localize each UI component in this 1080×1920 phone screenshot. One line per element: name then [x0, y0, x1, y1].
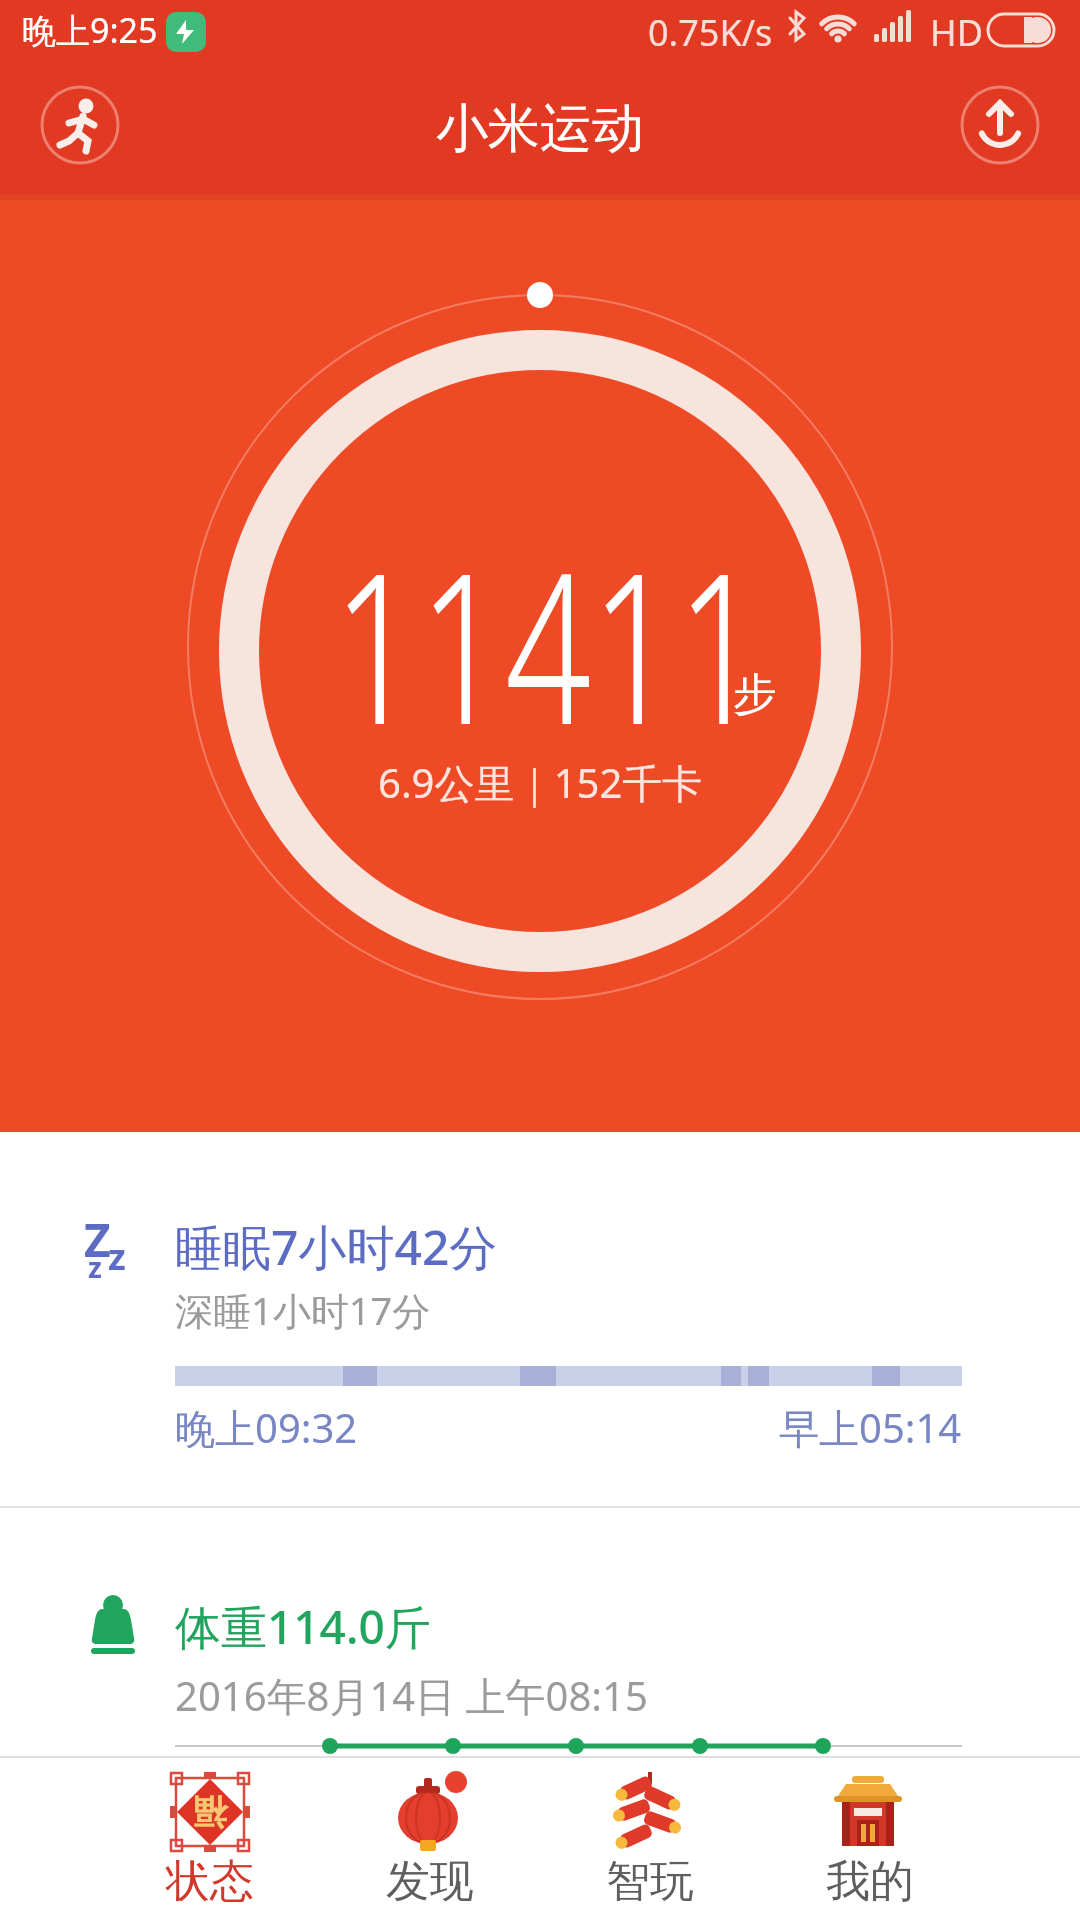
staticText: 小米运动: [436, 96, 644, 162]
staticText: 6.9公里｜152千卡: [378, 755, 703, 810]
button[interactable]: [956, 81, 1044, 169]
staticText: 早上05:14: [779, 1400, 962, 1455]
button[interactable]: 发现: [320, 1758, 540, 1920]
staticText: 晚上9:25: [22, 7, 158, 53]
staticText: Z: [84, 1208, 111, 1271]
staticText: 深睡1小时17分: [175, 1284, 431, 1336]
staticText: 睡眠7小时42分: [175, 1214, 498, 1280]
staticText: 晚上09:32: [175, 1400, 358, 1455]
staticText: 2016年8月14日 上午08:15: [175, 1668, 648, 1723]
staticText: HD: [930, 8, 983, 57]
staticText: 步: [733, 667, 777, 722]
button[interactable]: 体重114.0斤: [0, 1508, 1080, 1756]
button[interactable]: 我的: [760, 1758, 980, 1920]
button[interactable]: Z: [0, 1132, 1080, 1506]
staticText: 0.75K/s: [648, 8, 773, 57]
staticText: 状态: [166, 1854, 254, 1909]
staticText: 我的: [826, 1854, 914, 1909]
staticText: 体重114.0斤: [175, 1595, 431, 1658]
button[interactable]: 智玩: [540, 1758, 760, 1920]
staticText: 福: [193, 1791, 227, 1834]
button[interactable]: [36, 81, 124, 169]
button[interactable]: 福: [100, 1758, 320, 1920]
staticText: z: [88, 1248, 102, 1286]
staticText: 发现: [386, 1854, 474, 1909]
staticText: 11411: [333, 501, 763, 786]
staticText: 智玩: [606, 1854, 694, 1909]
staticText: z: [108, 1232, 126, 1281]
